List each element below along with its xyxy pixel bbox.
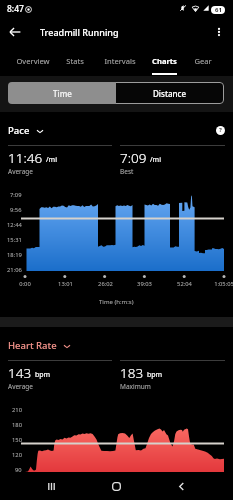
staticText: /mi	[150, 155, 161, 165]
staticText: Overview	[16, 56, 50, 66]
button[interactable]: Pace	[8, 124, 44, 137]
staticText: Stats	[66, 56, 84, 66]
staticText: 180	[12, 421, 22, 429]
button[interactable]: Gear	[182, 52, 224, 76]
staticText: 15:31	[7, 236, 22, 244]
staticText: 0:00	[19, 280, 31, 288]
staticText: 7:09	[120, 149, 147, 167]
button[interactable]: Intervals	[99, 52, 141, 76]
button[interactable]: Charts	[143, 52, 185, 76]
staticText: 90	[15, 466, 22, 474]
staticText: Heart Rate	[8, 339, 57, 352]
staticText: 21:06	[7, 266, 22, 274]
staticText: Average	[8, 382, 33, 391]
button[interactable]: Recent apps	[39, 474, 63, 498]
staticText: 26:02	[98, 280, 113, 288]
staticText: 183	[120, 364, 144, 382]
button[interactable]: More options	[208, 21, 230, 43]
staticText: bpm	[147, 370, 163, 380]
button[interactable]: Distance	[116, 82, 224, 104]
staticText: /mi	[46, 155, 57, 165]
staticText: Intervals	[104, 56, 136, 66]
staticText: 12:44	[7, 221, 22, 229]
staticText: Maximum	[120, 382, 151, 391]
staticText: 11:46	[8, 149, 43, 167]
button[interactable]: Back	[4, 21, 26, 43]
staticText: 18:19	[7, 251, 22, 259]
button[interactable]: Help	[213, 123, 227, 137]
staticText: Gear	[194, 56, 212, 66]
staticText: 210	[12, 406, 22, 414]
staticText: 143	[8, 364, 32, 382]
staticText: 61	[215, 6, 222, 14]
staticText: 150	[12, 436, 22, 444]
staticText: bpm	[35, 370, 51, 380]
button[interactable]: Time	[8, 82, 116, 104]
staticText: Time (h:m:s)	[99, 298, 134, 306]
button[interactable]: Back	[169, 474, 193, 498]
staticText: Charts	[152, 56, 177, 66]
staticText: Average	[8, 167, 33, 176]
staticText: 9:56	[10, 206, 22, 214]
button[interactable]: Heart Rate	[8, 339, 71, 352]
staticText: Treadmill Running	[40, 26, 119, 38]
staticText: 7:09	[10, 191, 22, 199]
staticText: 1:05:05	[214, 280, 233, 288]
staticText: 52:04	[177, 280, 192, 288]
staticText: Best	[120, 167, 134, 176]
staticText: Time	[53, 88, 72, 99]
staticText: 13:01	[58, 280, 73, 288]
staticText: 120	[12, 451, 22, 459]
staticText: 8:47	[7, 3, 24, 15]
button[interactable]: Home	[104, 474, 128, 498]
staticText: Pace	[8, 124, 30, 137]
staticText: Distance	[153, 88, 187, 99]
staticText: 39:03	[137, 280, 152, 288]
button[interactable]: Overview	[12, 52, 54, 76]
button[interactable]: Stats	[54, 52, 96, 76]
staticText: ?	[219, 126, 222, 134]
